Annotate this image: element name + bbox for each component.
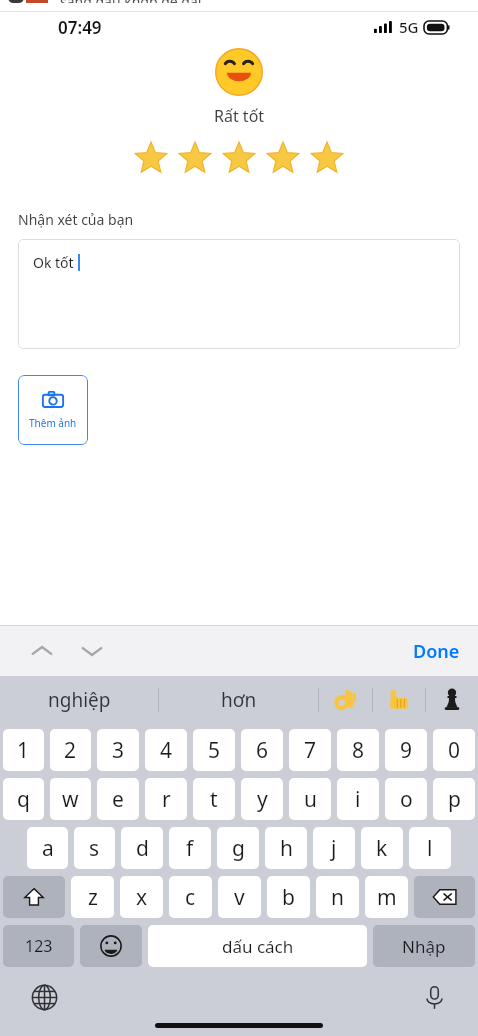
staticText: l bbox=[427, 834, 433, 863]
button[interactable]: j bbox=[313, 827, 355, 869]
button[interactable]: Nhập bbox=[373, 925, 475, 967]
staticText: x bbox=[136, 883, 148, 912]
button[interactable]: n bbox=[316, 876, 359, 918]
button[interactable]: a bbox=[27, 827, 68, 869]
button[interactable]: r bbox=[145, 778, 187, 820]
button[interactable]: Thêm ảnh bbox=[18, 375, 88, 445]
button[interactable]: 6 bbox=[241, 729, 283, 771]
button[interactable]: Previous field bbox=[20, 629, 64, 673]
button[interactable]: 7 bbox=[289, 729, 331, 771]
button[interactable]: Emoji bbox=[80, 925, 142, 967]
button[interactable]: 5 bbox=[193, 729, 235, 771]
button[interactable]: 123 bbox=[3, 925, 74, 967]
staticText: r bbox=[162, 785, 171, 814]
button[interactable]: b bbox=[267, 876, 310, 918]
staticText: q bbox=[17, 785, 30, 814]
button[interactable]: 8 bbox=[337, 729, 379, 771]
button[interactable]: Star 2 bbox=[173, 136, 217, 180]
button[interactable]: hơn bbox=[159, 676, 318, 724]
staticText: h bbox=[280, 834, 293, 863]
button[interactable]: dấu cách bbox=[148, 925, 367, 967]
button[interactable]: Star 1 bbox=[129, 136, 173, 180]
staticText: sáng dầu khớp dễ gặt bbox=[60, 0, 203, 3]
staticText: nghiệp bbox=[48, 687, 111, 713]
staticText: j bbox=[331, 834, 337, 863]
button[interactable]: d bbox=[121, 827, 163, 869]
staticText: u bbox=[304, 785, 317, 814]
staticText: Thêm ảnh bbox=[29, 416, 77, 430]
staticText: z bbox=[88, 883, 98, 912]
button[interactable]: m bbox=[365, 876, 408, 918]
staticText: b bbox=[282, 883, 295, 912]
staticText: 2 bbox=[64, 736, 77, 765]
button[interactable]: u bbox=[289, 778, 331, 820]
button[interactable]: Thumbs up emoji bbox=[373, 676, 425, 724]
button[interactable]: w bbox=[50, 778, 91, 820]
button[interactable]: z bbox=[71, 876, 114, 918]
button[interactable]: l bbox=[409, 827, 451, 869]
staticText: 123 bbox=[25, 935, 53, 957]
button[interactable]: Ok tốt bbox=[18, 239, 460, 349]
button[interactable]: Star 4 bbox=[261, 136, 305, 180]
staticText: Nhận xét của bạn bbox=[18, 210, 134, 229]
staticText: 3 bbox=[112, 736, 125, 765]
button[interactable]: nghiệp bbox=[0, 676, 158, 724]
staticText: a bbox=[42, 834, 54, 863]
staticText: dấu cách bbox=[222, 935, 294, 958]
button[interactable]: s bbox=[74, 827, 115, 869]
staticText: 6 bbox=[256, 736, 269, 765]
button[interactable]: e bbox=[97, 778, 139, 820]
button[interactable]: 9 bbox=[385, 729, 427, 771]
button[interactable]: 1 bbox=[3, 729, 44, 771]
button[interactable]: v bbox=[218, 876, 261, 918]
staticText: 4 bbox=[160, 736, 173, 765]
staticText: n bbox=[331, 883, 344, 912]
button[interactable]: Star 3 bbox=[217, 136, 261, 180]
staticText: y bbox=[257, 785, 268, 814]
staticText: 7 bbox=[304, 736, 317, 765]
staticText: 9 bbox=[400, 736, 413, 765]
staticText: Rất tốt bbox=[214, 105, 265, 127]
staticText: k bbox=[376, 834, 388, 863]
staticText: 5G bbox=[399, 17, 419, 37]
button[interactable]: Shift bbox=[3, 876, 65, 918]
staticText: s bbox=[89, 834, 100, 863]
button[interactable]: 4 bbox=[145, 729, 187, 771]
button[interactable]: Done bbox=[395, 631, 478, 672]
button[interactable]: Change keyboard language bbox=[26, 979, 62, 1015]
button[interactable]: i bbox=[337, 778, 379, 820]
button[interactable]: x bbox=[120, 876, 163, 918]
button[interactable]: h bbox=[265, 827, 307, 869]
button[interactable]: 0 bbox=[433, 729, 475, 771]
button[interactable]: g bbox=[217, 827, 259, 869]
staticText: hơn bbox=[221, 687, 257, 713]
button[interactable]: Next field bbox=[70, 629, 114, 673]
button[interactable]: t bbox=[193, 778, 235, 820]
staticText: e bbox=[112, 785, 124, 814]
button[interactable]: k bbox=[361, 827, 403, 869]
button[interactable]: o bbox=[385, 778, 427, 820]
button[interactable]: Star 5 bbox=[305, 136, 349, 180]
staticText: o bbox=[400, 785, 413, 814]
staticText: v bbox=[234, 883, 245, 912]
staticText: 0 bbox=[448, 736, 461, 765]
staticText: c bbox=[185, 883, 196, 912]
staticText: g bbox=[232, 834, 245, 863]
button[interactable]: 2 bbox=[50, 729, 91, 771]
staticText: Ok tốt bbox=[33, 253, 74, 272]
staticText: p bbox=[448, 785, 461, 814]
staticText: 1 bbox=[17, 736, 30, 765]
button[interactable]: y bbox=[241, 778, 283, 820]
button[interactable]: Voice input bbox=[416, 979, 452, 1015]
button[interactable]: 3 bbox=[97, 729, 139, 771]
button[interactable]: c bbox=[169, 876, 212, 918]
button[interactable]: p bbox=[433, 778, 475, 820]
button[interactable]: Backspace bbox=[414, 876, 475, 918]
button[interactable]: q bbox=[3, 778, 44, 820]
button[interactable]: OK hand emoji bbox=[319, 676, 372, 724]
button[interactable]: f bbox=[169, 827, 211, 869]
staticText: i bbox=[355, 785, 361, 814]
staticText: m bbox=[377, 883, 397, 912]
button[interactable]: Chess pawn emoji bbox=[426, 676, 478, 724]
staticText: w bbox=[62, 785, 79, 814]
